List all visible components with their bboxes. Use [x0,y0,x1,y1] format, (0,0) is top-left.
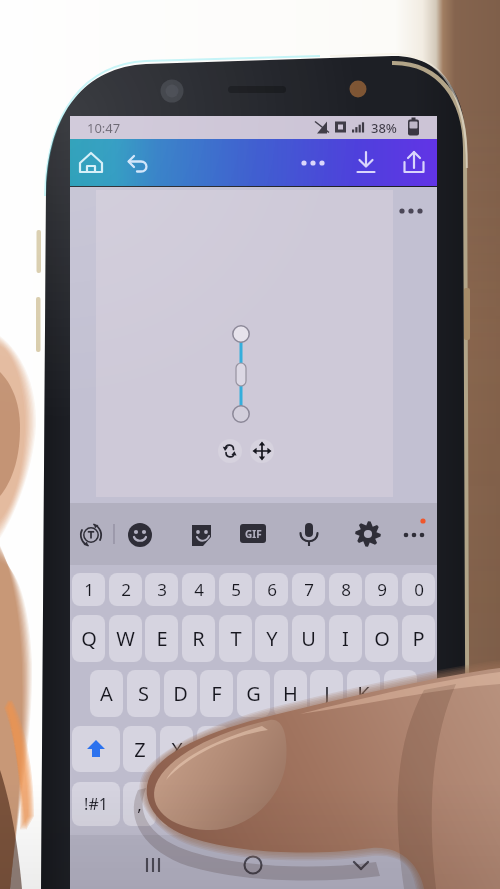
button[interactable]: Home [76,148,106,178]
button[interactable]: Y [255,615,288,662]
button[interactable]: A [90,670,123,717]
button[interactable]: 2 [109,573,142,606]
button[interactable]: 5 [219,573,252,606]
staticText: X [171,736,183,763]
staticText: O [374,625,390,652]
button[interactable]: Q [72,615,105,662]
button[interactable]: S [127,670,160,717]
staticText: 6 [267,578,277,601]
button[interactable]: 4 [182,573,215,606]
staticText: 10:47 [87,119,121,137]
staticText: GIF [245,527,262,541]
button[interactable]: 1 [72,573,105,606]
staticText: 9 [377,578,387,601]
button[interactable]: Translate [76,520,104,548]
staticText: I [342,625,349,652]
staticText: T [230,625,242,652]
staticText: C [207,736,220,763]
staticText: 2 [121,578,131,601]
button[interactable]: P [402,615,435,662]
button[interactable]: V [233,726,266,772]
button[interactable]: 3 [145,573,178,606]
button[interactable]: L [384,670,417,717]
button[interactable]: More options [298,148,328,178]
button[interactable]: 7 [292,573,325,606]
button[interactable]: K [347,670,380,717]
button[interactable]: W [109,615,142,662]
button[interactable]: Home [236,848,270,882]
button[interactable]: Space [160,782,325,826]
button[interactable]: 8 [329,573,362,606]
staticText: K [357,680,370,707]
button[interactable]: More [402,520,430,548]
staticText: 8 [341,578,351,601]
button[interactable]: Rotate [218,439,242,463]
staticText: 0 [414,578,424,601]
button[interactable]: Move [250,439,274,463]
button[interactable]: Page options [396,198,426,228]
button[interactable]: U [292,615,325,662]
staticText: 3 [157,578,167,601]
button[interactable]: Stickers [186,521,214,549]
staticText: A [100,680,113,707]
button[interactable]: 9 [365,573,398,606]
button[interactable]: , [123,782,156,826]
staticText: H [283,680,298,707]
staticText: !#1 [84,793,108,815]
button[interactable]: C [197,726,230,772]
button[interactable]: Settings [354,520,382,548]
button[interactable]: F [200,670,233,717]
button[interactable]: H [274,670,307,717]
button[interactable]: E [145,615,178,662]
button[interactable]: B [270,726,303,772]
button[interactable]: R [182,615,215,662]
staticText: B [280,736,293,763]
button[interactable]: Recent apps [136,848,170,882]
staticText: D [173,680,188,707]
button[interactable]: !#1 [72,782,120,826]
staticText: G [246,680,261,707]
staticText: P [412,625,425,652]
staticText: Q [81,625,97,652]
staticText: 1 [84,578,94,601]
staticText: 4 [194,578,204,601]
staticText: U [301,625,316,652]
staticText: 7 [304,578,314,601]
staticText: Y [266,625,278,652]
staticText: W [116,625,135,652]
button[interactable]: I [329,615,362,662]
button[interactable]: G [237,670,270,717]
button[interactable]: 6 [255,573,288,606]
staticText: L [395,680,406,707]
staticText: J [324,680,330,707]
staticText: E [156,625,168,652]
staticText: S [138,680,149,707]
staticText: 5 [231,578,241,601]
button[interactable]: J [310,670,343,717]
button[interactable]: Voice input [294,520,322,548]
button[interactable]: GIF [240,524,266,543]
button[interactable]: Hide keyboard [344,848,378,882]
button[interactable]: Undo [124,148,154,178]
button[interactable]: Z [123,726,156,772]
staticText: R [192,625,205,652]
staticText: 38% [371,119,397,137]
button[interactable]: O [365,615,398,662]
button[interactable]: X [160,726,193,772]
staticText: , [137,793,142,816]
staticText: F [211,680,222,707]
button[interactable]: D [164,670,197,717]
button[interactable]: Shift [72,726,120,772]
button[interactable]: Share [398,147,430,179]
button[interactable]: Download [350,147,382,179]
button[interactable]: Emoji [126,521,154,549]
button[interactable]: 0 [402,573,435,606]
button[interactable]: T [219,615,252,662]
